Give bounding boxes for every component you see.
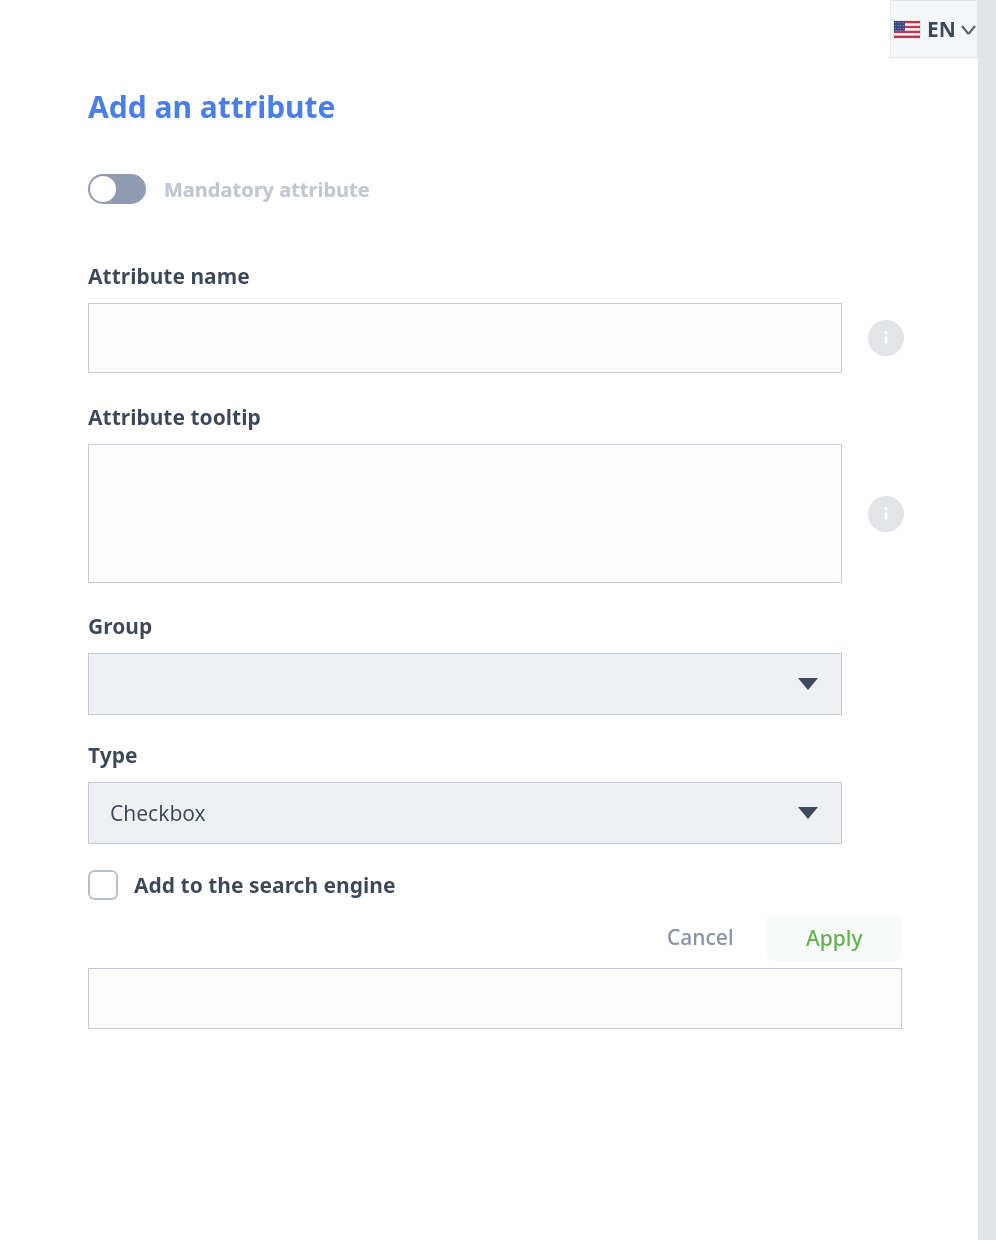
button[interactable]: [88, 968, 902, 1029]
button[interactable]: Select language: [890, 0, 978, 58]
staticText: EN: [927, 15, 956, 44]
staticText: Cancel: [667, 923, 734, 952]
button[interactable]: Mandatory attribute: [88, 174, 370, 204]
button[interactable]: Open dropdown: [88, 653, 842, 715]
staticText: Checkbox: [110, 799, 206, 828]
staticText: Group: [88, 612, 153, 641]
button[interactable]: More information: [868, 320, 904, 356]
staticText: Attribute tooltip: [88, 403, 261, 432]
button[interactable]: Add to the search engine: [88, 870, 396, 900]
button[interactable]: Checkbox: [88, 782, 842, 844]
staticText: Add to the search engine: [134, 871, 396, 900]
staticText: Mandatory attribute: [164, 176, 370, 203]
button[interactable]: Cancel: [647, 912, 754, 963]
button[interactable]: [88, 303, 842, 373]
staticText: Add an attribute: [88, 86, 336, 127]
button[interactable]: More information: [868, 496, 904, 532]
button[interactable]: Apply: [766, 915, 902, 961]
button[interactable]: [88, 444, 842, 583]
staticText: Attribute name: [88, 262, 250, 291]
staticText: Type: [88, 741, 138, 770]
staticText: Apply: [806, 924, 863, 953]
